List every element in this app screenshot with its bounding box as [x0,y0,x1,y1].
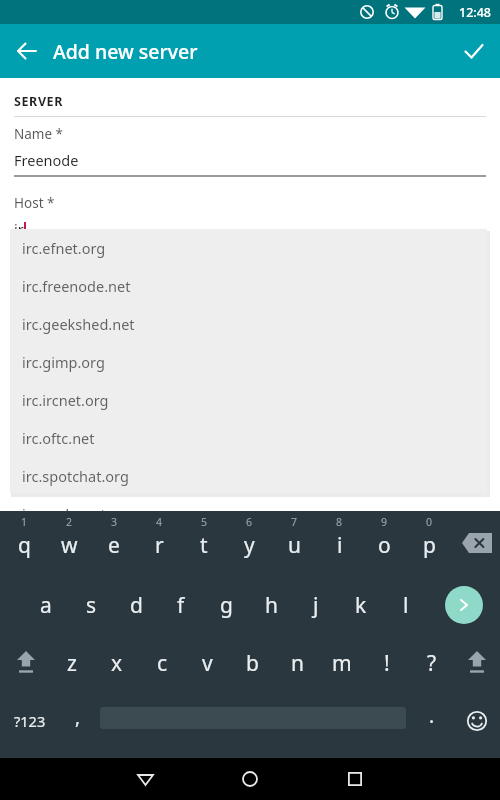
staticText: irc.undernet.org [22,504,134,524]
staticText: Host * [14,194,55,212]
button[interactable]: irc.undernet.org [10,495,487,533]
staticText: . [429,703,435,729]
staticText: n [291,649,304,678]
staticText: irc.spotchat.org [22,466,129,486]
button[interactable]: ?123 [2,697,58,745]
button[interactable]: irc.geekshed.net [10,305,487,343]
button[interactable]: v [185,639,229,687]
staticText: ! [384,649,390,678]
button[interactable]: Delete [455,527,499,559]
button[interactable]: ir [0,219,500,245]
staticText: s [86,591,97,620]
staticText: ir [14,219,24,239]
staticText: l [403,591,409,620]
button[interactable]: 0 [407,511,451,569]
staticText: k [355,591,367,620]
button[interactable]: Recent apps [330,758,380,800]
staticText: y [244,531,255,560]
button[interactable]: b [230,639,274,687]
button[interactable]: f [159,581,203,629]
button[interactable]: Shift [4,639,48,687]
button[interactable]: z [50,639,94,687]
button[interactable]: ! [365,639,409,687]
button[interactable]: c [140,639,184,687]
staticText: , [75,704,81,730]
button[interactable]: irc.freenode.net [10,267,487,305]
button[interactable]: k [339,581,383,629]
button[interactable]: d [114,581,158,629]
staticText: irc.freenode.net [22,276,131,296]
staticText: r [155,531,164,560]
staticText: q [18,531,31,560]
staticText: x [111,649,123,678]
staticText: Add new server [53,38,198,65]
staticText: 6 [246,515,253,529]
button[interactable]: n [275,639,319,687]
button[interactable]: h [249,581,293,629]
staticText: c [157,649,168,678]
staticText: 4 [156,515,163,529]
button[interactable]: irc.spotchat.org [10,457,487,495]
staticText: g [220,591,233,620]
staticText: 5 [201,515,208,529]
staticText: p [423,531,436,560]
button[interactable]: Freenode [0,150,500,177]
staticText: 7 [291,515,298,529]
staticText: o [378,531,391,560]
button[interactable]: irc.gimp.org [10,343,487,381]
button[interactable]: ? [410,639,454,687]
staticText: h [265,591,278,620]
button[interactable]: 1 [2,511,46,569]
button[interactable]: a [24,581,68,629]
button[interactable]: irc.efnet.org [10,229,487,267]
staticText: 8 [336,515,343,529]
staticText: 0 [426,515,433,529]
button[interactable]: Back [120,758,170,800]
staticText: a [40,591,52,620]
button[interactable]: , [58,697,98,745]
staticText: 3 [111,515,118,529]
button[interactable]: Navigate up [3,27,51,75]
button[interactable]: 6 [227,511,271,569]
staticText: j [313,591,319,620]
button[interactable]: j [294,581,338,629]
button[interactable]: l [384,581,428,629]
staticText: irc.geekshed.net [22,314,135,334]
staticText: f [177,591,185,620]
button[interactable]: Home [225,758,275,800]
staticText: irc.oftc.net [22,428,95,448]
button[interactable]: irc.ircnet.org [10,381,487,419]
button[interactable]: s [69,581,113,629]
button[interactable]: 3 [92,511,136,569]
button[interactable]: . [412,697,452,745]
button[interactable]: m [320,639,364,687]
staticText: e [108,531,120,560]
button[interactable]: 9 [362,511,406,569]
button[interactable]: 2 [47,511,91,569]
button[interactable]: x [95,639,139,687]
button[interactable]: irc.oftc.net [10,419,487,457]
button[interactable]: Enter [443,581,485,629]
staticText: ?123 [14,711,46,731]
button[interactable]: 5 [182,511,226,569]
button[interactable]: 4 [137,511,181,569]
staticText: 1 [21,515,28,529]
button[interactable]: g [204,581,248,629]
staticText: i [337,531,343,560]
staticText: irc.ircnet.org [22,390,109,410]
button[interactable]: Emoji [456,697,498,745]
staticText: w [61,531,78,560]
staticText: t [200,531,208,560]
button[interactable]: Save [450,27,498,75]
button[interactable]: Shift [455,639,499,687]
staticText: d [130,591,143,620]
staticText: 9 [381,515,388,529]
button[interactable]: 8 [317,511,361,569]
button[interactable]: 7 [272,511,316,569]
staticText: v [202,649,213,678]
staticText: Name * [14,125,64,143]
staticText: 2 [66,515,73,529]
staticText: irc.efnet.org [22,238,106,258]
staticText: ? [427,649,437,678]
